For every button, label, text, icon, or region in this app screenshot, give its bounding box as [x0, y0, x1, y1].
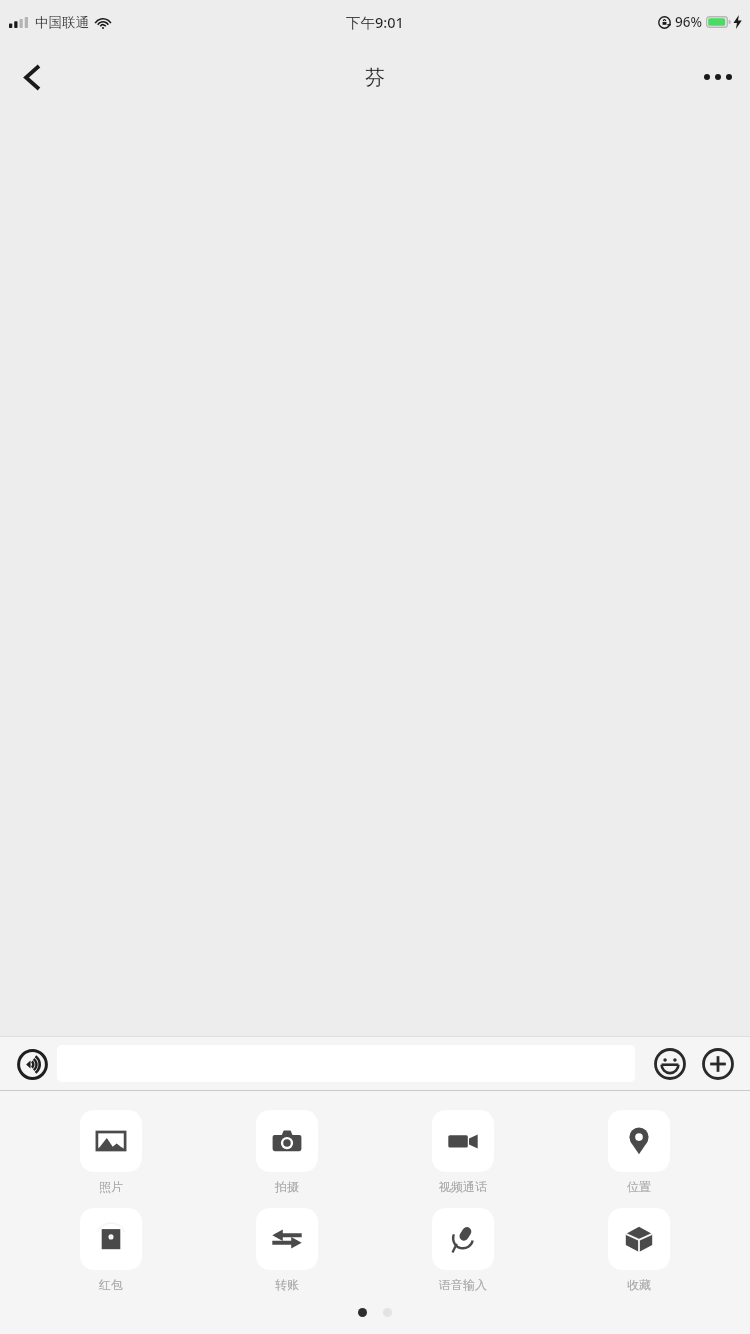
button[interactable]: 照片	[46, 1110, 176, 1194]
staticText: 芬	[365, 65, 385, 90]
button[interactable]: More options	[686, 45, 750, 109]
staticText: 照片	[99, 1179, 123, 1194]
staticText: 96%	[675, 13, 702, 31]
button[interactable]: Emoji	[648, 1042, 692, 1086]
button[interactable]: 转账	[222, 1208, 352, 1292]
staticText: 收藏	[627, 1277, 651, 1292]
button[interactable]: 红包	[46, 1208, 176, 1292]
button[interactable]: 拍摄	[222, 1110, 352, 1194]
staticText: 中国联通	[35, 14, 89, 31]
staticText: 转账	[275, 1277, 299, 1292]
button[interactable]: Voice input	[10, 1042, 54, 1086]
button[interactable]: 视频通话	[398, 1110, 528, 1194]
staticText: 视频通话	[439, 1179, 487, 1194]
button[interactable]: Back	[0, 45, 64, 109]
staticText: 语音输入	[439, 1277, 487, 1292]
button[interactable]: 收藏	[574, 1208, 704, 1292]
staticText: 位置	[627, 1179, 651, 1194]
button[interactable]: 语音输入	[398, 1208, 528, 1292]
staticText: 下午9:01	[346, 12, 404, 32]
staticText: 红包	[99, 1277, 123, 1292]
button[interactable]: More attachments	[696, 1042, 740, 1086]
staticText: 拍摄	[275, 1179, 299, 1194]
button[interactable]: 位置	[574, 1110, 704, 1194]
